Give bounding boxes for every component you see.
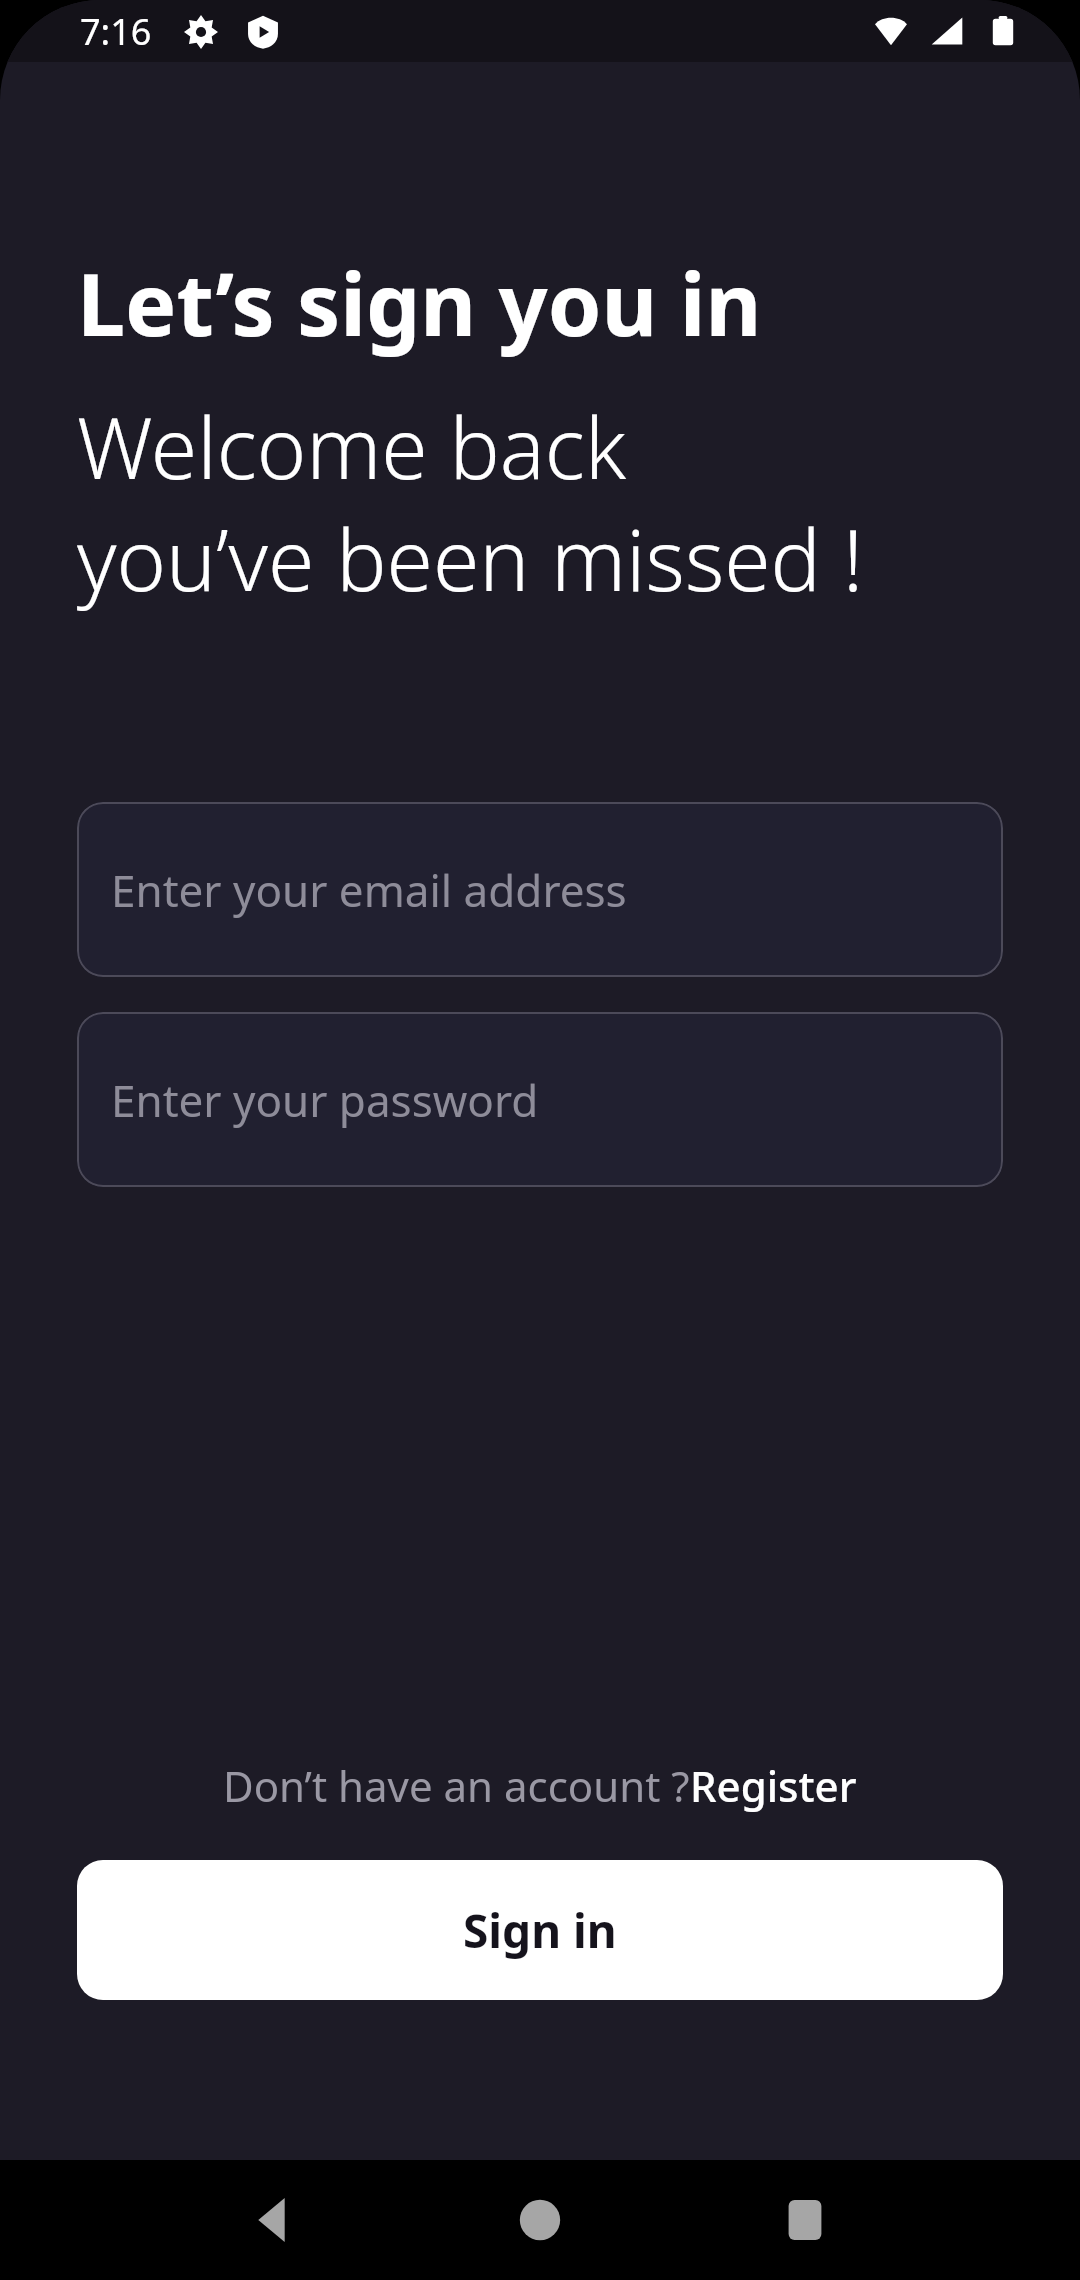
button[interactable]: Recent apps [750,2165,860,2275]
staticText: Register [690,1757,857,1814]
staticText: Enter your password [111,1070,539,1130]
staticText: Sign in [463,1899,617,1962]
staticText: Let’s sign you in [77,244,762,361]
button[interactable]: Register [690,1757,857,1814]
button[interactable]: Home [485,2165,595,2275]
button[interactable]: Sign in [77,1860,1003,2000]
button[interactable]: Enter your email address [77,802,1003,977]
staticText: Enter your email address [111,860,627,920]
button[interactable]: Enter your password [77,1012,1003,1187]
staticText: Welcome back you’ve been missed ! [77,389,864,616]
staticText: Don’t have an account ? [223,1757,690,1814]
staticText: 7:16 [80,7,152,56]
button[interactable]: Back [220,2165,330,2275]
